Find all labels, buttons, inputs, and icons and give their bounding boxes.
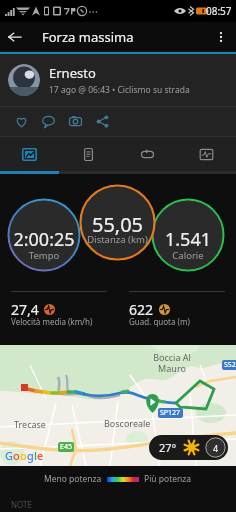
staticText: E45 — [60, 442, 72, 452]
button[interactable]: Like — [8, 108, 35, 135]
staticText: g — [27, 448, 34, 463]
staticText: o — [13, 448, 20, 463]
button[interactable]: Back — [0, 22, 30, 52]
staticText: G — [5, 448, 13, 463]
button[interactable]: 27° — [149, 435, 228, 460]
staticText: 55,05 — [79, 211, 156, 238]
staticText: o — [20, 448, 27, 463]
staticText: e — [37, 448, 44, 463]
button[interactable]: Splits — [59, 137, 118, 171]
staticText: Più potenza — [144, 473, 192, 485]
button[interactable]: Ernesto — [0, 54, 236, 106]
button[interactable]: Overview — [0, 137, 59, 171]
staticText: 08:57 — [206, 4, 232, 18]
staticText: l — [34, 448, 37, 463]
staticText: Calorie — [151, 249, 225, 262]
staticText: Trecase — [14, 418, 46, 430]
staticText: NOTE — [11, 499, 32, 510]
button[interactable]: Laps — [118, 137, 177, 171]
staticText: SS2 — [224, 360, 236, 370]
button[interactable]: More options — [206, 22, 236, 52]
staticText: Distanza (km) — [79, 233, 156, 246]
staticText: Boccia Al Mauro — [153, 351, 191, 374]
staticText: 1.541 — [151, 227, 225, 252]
button[interactable]: Comment — [35, 108, 62, 135]
staticText: Guad. quota (m) — [129, 316, 190, 327]
staticText: Meno potenza — [44, 473, 102, 485]
button[interactable]: Share — [89, 108, 116, 135]
staticText: 27° — [159, 440, 177, 455]
staticText: 622 — [129, 300, 154, 319]
staticText: 17 ago @ 06:43 • Ciclismo su strada — [49, 84, 190, 96]
staticText: 2:00:25 — [7, 227, 81, 252]
staticText: 27,4 — [11, 300, 39, 319]
button[interactable]: Photos — [62, 108, 89, 135]
staticText: Boscoreale — [104, 417, 151, 429]
button[interactable]: 27,4 — [0, 285, 118, 345]
staticText: 4 — [213, 442, 219, 454]
button[interactable]: 622 — [118, 285, 236, 345]
staticText: Tempo — [7, 249, 81, 262]
staticText: SP127 — [160, 408, 181, 418]
button[interactable]: Analysis — [177, 137, 236, 171]
button[interactable]: Route map — [0, 345, 236, 466]
staticText: Ernesto — [49, 64, 96, 82]
staticText: Forza massima — [42, 28, 134, 46]
staticText: Velocità media (km/h) — [11, 316, 93, 327]
